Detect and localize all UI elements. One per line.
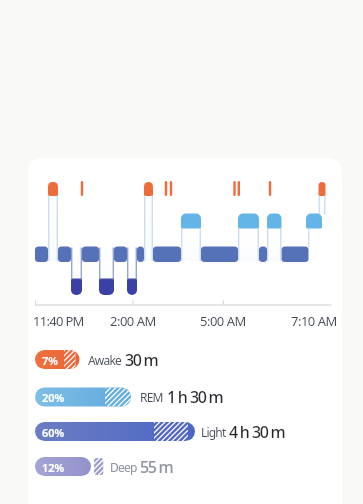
- staticText: 2:00 AM: [110, 312, 156, 330]
- staticText: Deep: [110, 459, 137, 475]
- staticText: 20%: [42, 390, 65, 405]
- button[interactable]: [30, 419, 310, 444]
- staticText: 11:40 PM: [33, 312, 84, 330]
- staticText: REM: [140, 389, 163, 405]
- staticText: 60%: [42, 425, 65, 440]
- button[interactable]: [28, 158, 342, 504]
- staticText: 7:10 AM: [291, 312, 337, 330]
- staticText: 55 m: [140, 456, 173, 478]
- staticText: 1 h: [167, 386, 187, 408]
- staticText: 7%: [42, 353, 58, 368]
- button[interactable]: [30, 385, 310, 410]
- staticText: 12%: [42, 460, 65, 475]
- button[interactable]: [30, 454, 310, 479]
- staticText: 30 m: [252, 421, 285, 443]
- staticText: 30 m: [125, 349, 158, 371]
- staticText: 5:00 AM: [200, 312, 246, 330]
- staticText: Light: [201, 424, 226, 440]
- staticText: 30 m: [190, 386, 223, 408]
- staticText: Awake: [88, 352, 122, 368]
- button[interactable]: [30, 347, 310, 372]
- staticText: 4 h: [229, 421, 249, 443]
